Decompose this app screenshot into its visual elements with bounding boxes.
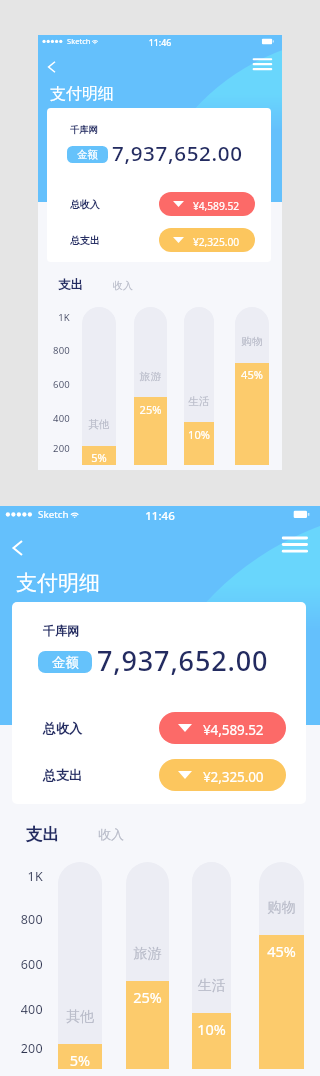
- staticText: 800: [11, 911, 43, 928]
- button[interactable]: Menu: [281, 535, 309, 555]
- staticText: 1K: [46, 311, 70, 324]
- staticText: 10%: [192, 1019, 231, 1039]
- staticText: 11:46: [38, 37, 282, 49]
- staticText: 金额: [77, 148, 98, 161]
- staticText: 其他: [58, 1008, 102, 1026]
- staticText: Sketch: [67, 36, 91, 46]
- button[interactable]: 收入: [88, 816, 134, 852]
- staticText: 600: [11, 956, 43, 973]
- button[interactable]: 25%: [134, 307, 167, 465]
- staticText: 5%: [82, 450, 116, 465]
- button[interactable]: Menu: [252, 57, 273, 72]
- staticText: 11:46: [0, 508, 320, 524]
- button[interactable]: 金额: [67, 146, 108, 163]
- staticText: 25%: [126, 987, 169, 1007]
- staticText: 支付明细: [50, 84, 114, 104]
- staticText: 生活: [184, 395, 214, 408]
- button[interactable]: 45%: [235, 307, 269, 465]
- staticText: ¥4,589.52: [193, 199, 239, 213]
- button[interactable]: Back: [6, 536, 30, 560]
- staticText: 1K: [11, 868, 43, 885]
- staticText: 总支出: [43, 767, 82, 783]
- staticText: 总收入: [70, 198, 100, 210]
- staticText: 购物: [259, 899, 304, 917]
- staticText: 千库网: [70, 124, 98, 136]
- staticText: ¥2,325.00: [193, 235, 239, 249]
- button[interactable]: ¥4,589.52: [159, 192, 255, 216]
- staticText: 收入: [113, 279, 133, 291]
- button[interactable]: 收入: [105, 271, 140, 298]
- staticText: 支付明细: [16, 570, 100, 596]
- button[interactable]: 10%: [184, 307, 214, 465]
- button[interactable]: 45%: [259, 862, 304, 1069]
- staticText: 10%: [184, 427, 214, 442]
- staticText: 7,937,652.00: [112, 139, 243, 167]
- button[interactable]: 金额: [38, 651, 92, 673]
- staticText: ¥2,325.00: [203, 768, 264, 786]
- staticText: 800: [46, 344, 70, 357]
- button[interactable]: ¥2,325.00: [159, 228, 255, 252]
- staticText: 旅游: [134, 370, 167, 383]
- button[interactable]: 支出: [14, 816, 70, 852]
- staticText: 400: [46, 412, 70, 425]
- staticText: 金额: [52, 654, 79, 671]
- staticText: 购物: [235, 335, 269, 348]
- staticText: 收入: [98, 826, 124, 842]
- staticText: 千库网: [43, 623, 79, 638]
- staticText: 200: [46, 442, 70, 455]
- staticText: 5%: [58, 1050, 102, 1069]
- button[interactable]: 5%: [82, 307, 116, 465]
- staticText: 25%: [134, 402, 167, 417]
- button[interactable]: ¥2,325.00: [159, 759, 286, 791]
- button[interactable]: 支出: [49, 271, 92, 298]
- staticText: ¥4,589.52: [203, 721, 264, 739]
- staticText: 支出: [26, 824, 59, 845]
- button[interactable]: Back: [43, 58, 61, 76]
- staticText: 旅游: [126, 945, 169, 963]
- staticText: 400: [11, 1001, 43, 1018]
- staticText: 总支出: [70, 234, 100, 246]
- staticText: 7,937,652.00: [97, 642, 269, 679]
- staticText: 45%: [235, 367, 269, 382]
- staticText: 200: [11, 1040, 43, 1057]
- staticText: 600: [46, 378, 70, 391]
- staticText: Sketch: [38, 508, 69, 521]
- button[interactable]: 25%: [126, 862, 169, 1069]
- button[interactable]: ¥4,589.52: [159, 712, 286, 744]
- staticText: 45%: [259, 941, 304, 961]
- button[interactable]: 5%: [58, 862, 102, 1069]
- staticText: 总收入: [43, 720, 82, 736]
- staticText: 支出: [58, 277, 84, 293]
- button[interactable]: 10%: [192, 862, 231, 1069]
- staticText: 其他: [82, 418, 116, 431]
- staticText: 生活: [192, 977, 231, 995]
